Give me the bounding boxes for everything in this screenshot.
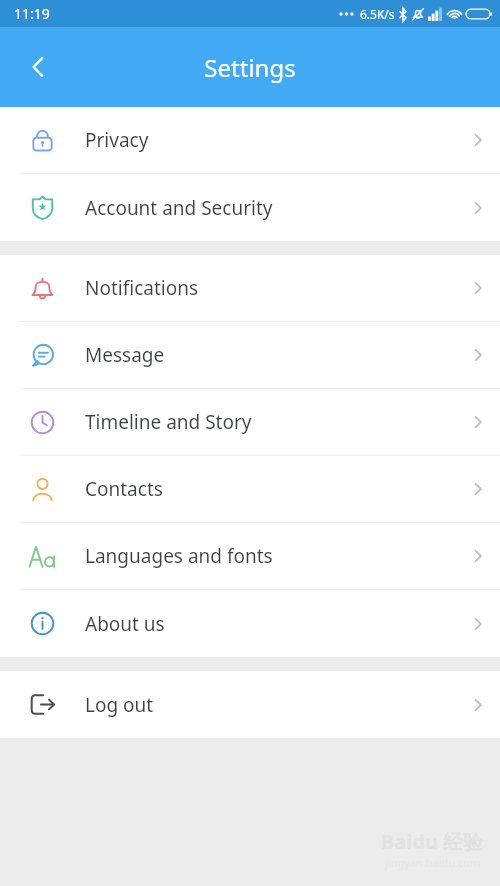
- button[interactable]: Account and Security: [0, 174, 500, 241]
- staticText: About us: [85, 611, 456, 637]
- staticText: Languages and fonts: [85, 543, 456, 569]
- button[interactable]: Timeline and Story: [0, 389, 500, 456]
- staticText: Contacts: [85, 476, 456, 502]
- staticText: Notifications: [85, 275, 456, 301]
- staticText: 6.5K/s: [360, 6, 395, 22]
- button[interactable]: Privacy: [0, 107, 500, 174]
- button[interactable]: About us: [0, 590, 500, 657]
- staticText: Baidu 经验: [381, 828, 484, 855]
- staticText: Timeline and Story: [85, 409, 456, 435]
- staticText: Privacy: [85, 127, 456, 153]
- button[interactable]: Languages and fonts: [0, 523, 500, 590]
- staticText: Settings: [204, 51, 296, 84]
- button[interactable]: Contacts: [0, 456, 500, 523]
- staticText: Log out: [85, 692, 456, 718]
- staticText: Account and Security: [85, 195, 456, 221]
- staticText: 11:19: [14, 4, 50, 23]
- button[interactable]: Log out: [0, 671, 500, 738]
- button[interactable]: Back: [12, 41, 64, 93]
- staticText: Message: [85, 342, 456, 368]
- button[interactable]: Message: [0, 322, 500, 389]
- button[interactable]: Notifications: [0, 255, 500, 322]
